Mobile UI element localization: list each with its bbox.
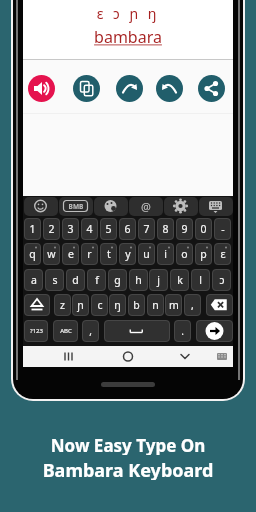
staticText: s <box>52 273 58 287</box>
staticText: 8 <box>162 222 169 236</box>
button[interactable]: 6 <box>119 218 136 240</box>
button[interactable] <box>196 320 233 342</box>
staticText: c <box>97 298 103 312</box>
button[interactable]: ɲ <box>72 294 89 316</box>
staticText: ?123 <box>30 327 43 335</box>
button[interactable]: ?123 <box>24 320 48 342</box>
staticText: bambara <box>23 26 233 49</box>
staticText: k <box>177 273 183 287</box>
staticText: l <box>199 273 202 287</box>
staticText: 6 <box>124 222 131 236</box>
button[interactable] <box>206 294 233 316</box>
button[interactable]: m <box>165 294 182 316</box>
staticText: f <box>95 273 99 287</box>
button[interactable]: e <box>62 243 79 265</box>
staticText: ŋ <box>114 298 121 312</box>
staticText: i <box>164 247 167 261</box>
staticText: @ <box>138 199 154 214</box>
button[interactable]: ABC <box>53 320 78 342</box>
button[interactable]: c <box>91 294 108 316</box>
button[interactable] <box>94 197 128 216</box>
button[interactable]: z <box>54 294 71 316</box>
button[interactable]: a <box>24 269 43 291</box>
button[interactable]: b <box>128 294 145 316</box>
button[interactable]: t <box>100 243 117 265</box>
button[interactable] <box>116 75 143 102</box>
staticText: h <box>135 273 142 287</box>
button[interactable]: ŋ <box>109 294 126 316</box>
button[interactable]: j <box>149 269 168 291</box>
staticText: ABC <box>60 327 72 335</box>
staticText: 3 <box>67 222 74 236</box>
button[interactable]: . <box>174 320 191 342</box>
button[interactable] <box>24 197 58 216</box>
staticText: o <box>181 247 188 261</box>
button[interactable] <box>129 197 163 216</box>
button[interactable] <box>24 294 50 316</box>
button[interactable]: 0 <box>195 218 212 240</box>
button[interactable]: 7 <box>138 218 155 240</box>
staticText: d <box>72 273 79 287</box>
button[interactable]: - <box>214 218 231 240</box>
button[interactable]: d <box>66 269 85 291</box>
button[interactable]: y <box>119 243 136 265</box>
button[interactable] <box>156 75 183 102</box>
button[interactable]: q <box>24 243 41 265</box>
staticText: Bambara Keyboard <box>0 458 256 480</box>
staticText: ɛ ɔ ɲ ŋ <box>23 4 233 23</box>
button[interactable]: l <box>191 269 210 291</box>
button[interactable]: g <box>108 269 127 291</box>
button[interactable]: , <box>82 320 99 342</box>
button[interactable] <box>199 197 233 216</box>
staticText: w <box>47 247 56 261</box>
button[interactable]: k <box>170 269 189 291</box>
staticText: 5 <box>105 222 112 236</box>
staticText: 0 <box>200 222 207 236</box>
staticText: Now Easy Type On <box>0 434 256 455</box>
button[interactable]: w <box>43 243 60 265</box>
button[interactable]: 5 <box>100 218 117 240</box>
staticText: ɔ <box>219 273 225 287</box>
button[interactable]: 2 <box>43 218 60 240</box>
button[interactable]: 4 <box>81 218 98 240</box>
button[interactable]: p <box>195 243 212 265</box>
button[interactable]: 1 <box>24 218 41 240</box>
button[interactable] <box>104 320 170 342</box>
button[interactable]: i <box>157 243 174 265</box>
staticText: b <box>133 298 140 312</box>
button[interactable]: h <box>129 269 148 291</box>
staticText: 1 <box>29 222 36 236</box>
staticText: e <box>68 247 74 261</box>
button[interactable] <box>28 75 55 102</box>
button[interactable]: u <box>138 243 155 265</box>
staticText: a <box>31 273 37 287</box>
staticText: , <box>89 324 92 338</box>
button[interactable]: 3 <box>62 218 79 240</box>
staticText: q <box>29 247 36 261</box>
button[interactable]: ɛ <box>214 243 231 265</box>
staticText: 7 <box>143 222 150 236</box>
button[interactable]: o <box>176 243 193 265</box>
staticText: g <box>114 273 121 287</box>
button[interactable] <box>164 197 198 216</box>
staticText: m <box>169 298 179 312</box>
button[interactable]: f <box>87 269 106 291</box>
button[interactable] <box>198 75 225 102</box>
staticText: n <box>152 298 159 312</box>
staticText: ɛ <box>220 247 226 261</box>
button[interactable]: n <box>147 294 164 316</box>
button[interactable]: 9 <box>176 218 193 240</box>
staticText: p <box>200 247 207 261</box>
button[interactable]: 8 <box>157 218 174 240</box>
button[interactable] <box>59 197 93 216</box>
staticText: z <box>60 298 65 312</box>
staticText: BMB <box>64 202 88 211</box>
button[interactable] <box>73 75 100 102</box>
button[interactable]: s <box>45 269 64 291</box>
staticText: r <box>87 247 92 261</box>
button[interactable]: ɔ <box>212 269 231 291</box>
staticText: t <box>107 247 111 261</box>
staticText: u <box>143 247 150 261</box>
button[interactable]: , <box>184 294 201 316</box>
button[interactable]: r <box>81 243 98 265</box>
